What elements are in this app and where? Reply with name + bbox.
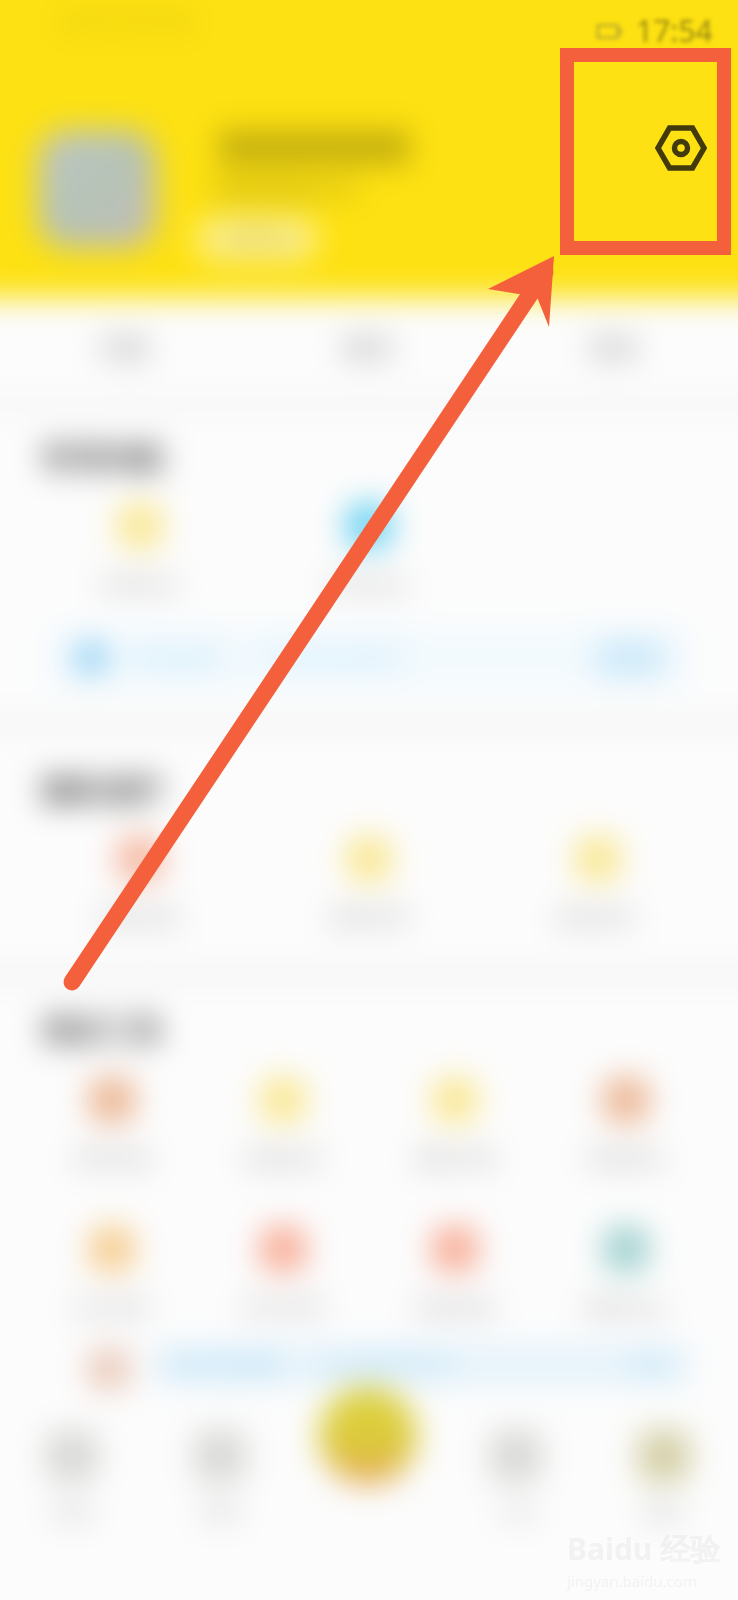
button[interactable]: 支付保护 xyxy=(32,1226,192,1321)
button[interactable]: 体检 xyxy=(12,1430,132,1525)
button[interactable]: 数据保护 xyxy=(518,836,678,931)
button[interactable]: 清理加速 xyxy=(32,1077,192,1172)
button[interactable]: 清理 xyxy=(160,1430,280,1525)
button[interactable]: 网络优化 xyxy=(546,1226,706,1321)
button[interactable]: 功能 xyxy=(0,298,246,398)
staticText: 更多 xyxy=(589,332,641,365)
staticText: 17:54 xyxy=(636,10,713,51)
staticText: 隐私保护 xyxy=(42,772,162,810)
button[interactable]: 安全提示 xyxy=(48,626,690,690)
button[interactable]: 服务 xyxy=(246,298,492,398)
button[interactable]: 立即开启 xyxy=(196,216,318,262)
button[interactable]: 权限管理 xyxy=(289,836,449,931)
staticText: 账号安全 xyxy=(329,573,409,598)
button[interactable]: 流量监控 xyxy=(203,1077,363,1172)
button[interactable]: 软件管理 xyxy=(203,1226,363,1321)
other: Annotation highlight xyxy=(0,0,738,1600)
button[interactable]: 账号安全 xyxy=(289,503,449,598)
button[interactable]: 应用安全 xyxy=(60,503,220,598)
staticText: 开启安全防护 xyxy=(262,643,406,673)
button[interactable]: 更多 xyxy=(492,298,738,398)
button[interactable]: 工具 xyxy=(456,1430,576,1525)
staticText: Baidu 经验 xyxy=(567,1528,721,1569)
staticText: 去开启 xyxy=(600,646,660,671)
staticText: 更多工具 xyxy=(42,1012,162,1050)
staticText: 点击查看详情 xyxy=(318,1351,450,1379)
staticText: jingyan.baidu.com xyxy=(567,1571,697,1591)
staticText: 常用功能 xyxy=(42,440,162,478)
staticText: 服务 xyxy=(343,332,395,365)
staticText: 副标题描述文字 xyxy=(213,176,360,202)
button[interactable]: 新消息提醒 xyxy=(152,1344,690,1386)
staticText: 某某某某某某 xyxy=(218,128,410,168)
button[interactable]: 骚扰拦截 xyxy=(375,1077,535,1172)
button[interactable]: 隐私设置 xyxy=(60,836,220,931)
button[interactable]: 我的 xyxy=(604,1430,724,1525)
staticText: 功能 xyxy=(97,332,149,365)
button[interactable]: 游戏加速 xyxy=(375,1226,535,1321)
staticText: 隐私设置 xyxy=(100,906,180,931)
staticText: 立即开启 xyxy=(221,228,293,251)
button[interactable]: 病毒查杀 xyxy=(546,1077,706,1172)
button[interactable]: 扫描 xyxy=(319,1387,417,1485)
